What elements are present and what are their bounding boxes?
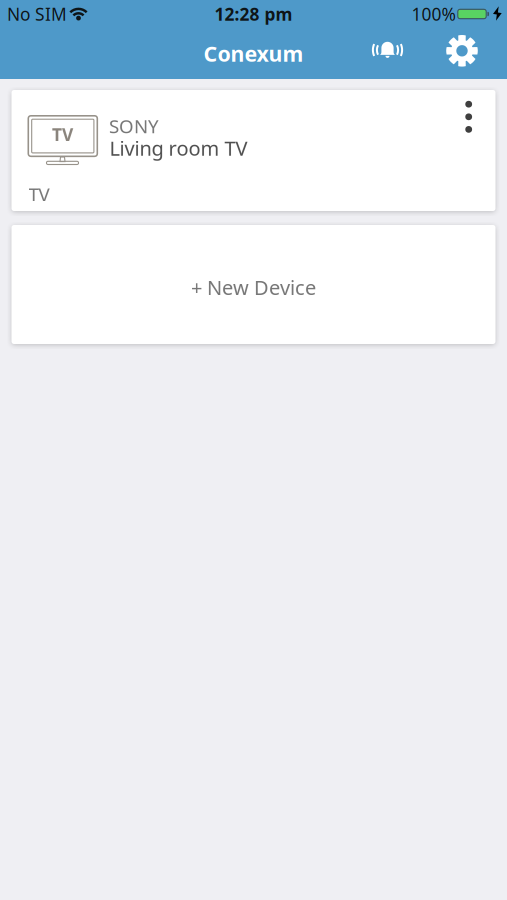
staticText: Conexum bbox=[203, 39, 303, 68]
button[interactable]: Settings bbox=[439, 28, 485, 74]
button[interactable]: Device options bbox=[457, 93, 480, 141]
staticText: No SIM bbox=[7, 2, 67, 25]
staticText: 100% bbox=[411, 2, 455, 25]
button[interactable]: + New Device bbox=[11, 225, 495, 344]
staticText: TV bbox=[28, 182, 49, 207]
staticText: Living room TV bbox=[109, 135, 247, 161]
button[interactable]: Notifications bbox=[361, 32, 413, 70]
button[interactable]: TV bbox=[11, 90, 495, 211]
staticText: + New Device bbox=[191, 274, 316, 301]
staticText: 12:28 pm bbox=[214, 2, 292, 25]
staticText: TV bbox=[52, 123, 73, 146]
staticText: SONY bbox=[109, 113, 159, 138]
